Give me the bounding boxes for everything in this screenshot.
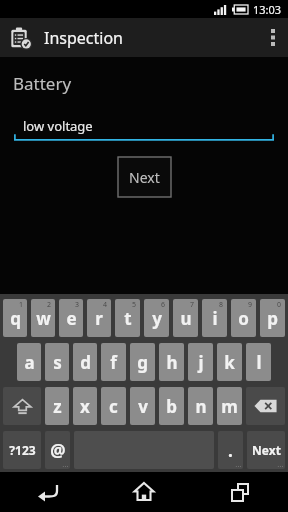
staticText: r — [95, 307, 103, 330]
button[interactable]: low voltage — [14, 115, 274, 141]
staticText: 2 — [47, 300, 52, 310]
staticText: z — [53, 395, 62, 418]
button[interactable]: q — [3, 299, 27, 337]
button[interactable]: c — [101, 387, 126, 425]
button[interactable]: e — [59, 299, 83, 337]
staticText: 13:03 — [253, 2, 282, 17]
button[interactable]: f — [101, 343, 126, 381]
staticText: 8 — [219, 300, 224, 310]
button[interactable]: i — [202, 299, 227, 337]
button[interactable]: n — [188, 387, 213, 425]
staticText: t — [124, 307, 132, 330]
staticText: 5 — [132, 300, 137, 310]
button[interactable]: Backspace — [246, 387, 285, 425]
button[interactable]: o — [231, 299, 256, 337]
button[interactable]: Next — [247, 431, 285, 469]
button[interactable]: k — [217, 343, 242, 381]
staticText: ⋯ — [277, 462, 283, 469]
staticText: m — [221, 395, 238, 418]
button[interactable]: s — [45, 343, 69, 381]
button[interactable]: y — [144, 299, 169, 337]
button[interactable]: Home — [96, 472, 192, 512]
button[interactable]: h — [159, 343, 184, 381]
staticText: y — [152, 307, 162, 330]
button[interactable]: d — [73, 343, 97, 381]
button[interactable]: More options — [258, 18, 288, 57]
button[interactable]: l — [246, 343, 271, 381]
staticText: c — [109, 395, 118, 418]
staticText: low voltage — [23, 117, 93, 135]
button[interactable]: v — [130, 387, 155, 425]
staticText: l — [256, 351, 262, 374]
staticText: x — [80, 395, 90, 418]
staticText: @ — [50, 439, 66, 462]
button[interactable]: @ — [45, 431, 70, 469]
staticText: . — [228, 439, 233, 462]
staticText: i — [212, 307, 218, 330]
staticText: u — [180, 307, 192, 330]
staticText: Inspection — [44, 27, 123, 49]
button[interactable]: w — [31, 299, 55, 337]
button[interactable]: Shift — [3, 387, 41, 425]
button[interactable]: z — [45, 387, 69, 425]
staticText: e — [66, 307, 77, 330]
staticText: q — [10, 307, 21, 330]
button[interactable]: g — [130, 343, 155, 381]
staticText: g — [137, 351, 148, 374]
button[interactable]: p — [260, 299, 285, 337]
button[interactable]: ?123 — [3, 431, 41, 469]
button[interactable]: a — [17, 343, 41, 381]
staticText: n — [195, 395, 207, 418]
staticText: k — [224, 351, 235, 374]
staticText: ⋯ — [62, 462, 68, 469]
staticText: 3 — [75, 300, 80, 310]
staticText: h — [166, 351, 178, 374]
staticText: 6 — [161, 300, 166, 310]
staticText: o — [238, 307, 249, 330]
button[interactable]: m — [217, 387, 242, 425]
button[interactable]: Back — [0, 472, 96, 512]
staticText: a — [24, 351, 35, 374]
button[interactable]: j — [188, 343, 213, 381]
staticText: b — [166, 395, 177, 418]
staticText: 7 — [190, 300, 195, 310]
staticText: 0 — [277, 300, 282, 310]
staticText: w — [36, 307, 51, 330]
staticText: Battery — [13, 72, 72, 95]
button[interactable]: Next — [118, 157, 171, 197]
button[interactable]: . — [218, 431, 243, 469]
staticText: Next — [129, 168, 160, 187]
staticText: 9 — [248, 300, 253, 310]
staticText: ⋯ — [235, 462, 241, 469]
staticText: f — [110, 351, 117, 374]
staticText: Next — [252, 442, 281, 458]
button[interactable]: r — [87, 299, 111, 337]
button[interactable]: t — [115, 299, 140, 337]
staticText: 1 — [19, 300, 24, 310]
staticText: p — [267, 307, 278, 330]
staticText: 4 — [103, 300, 108, 310]
staticText: v — [138, 395, 148, 418]
staticText: s — [53, 351, 62, 374]
button[interactable]: x — [73, 387, 97, 425]
button[interactable]: u — [173, 299, 198, 337]
staticText: d — [80, 351, 91, 374]
button[interactable]: b — [159, 387, 184, 425]
button[interactable]: Recents — [192, 472, 288, 512]
staticText: ?123 — [9, 442, 36, 458]
staticText: j — [198, 351, 204, 374]
